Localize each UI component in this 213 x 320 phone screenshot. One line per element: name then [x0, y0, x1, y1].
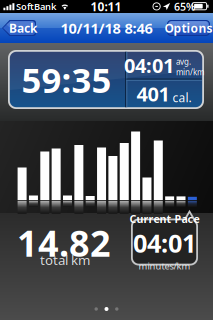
staticText: total km [40, 251, 90, 269]
staticText: 04:01 [133, 226, 196, 260]
staticText: 65% [174, 0, 195, 14]
staticText: 10:11 [90, 0, 121, 14]
button[interactable]: Back [2, 20, 36, 36]
staticText: avg. [176, 56, 191, 67]
staticText: 401 [137, 80, 170, 107]
staticText: min/km [176, 67, 204, 78]
staticText: Options [164, 20, 212, 36]
staticText: 59:35 [21, 56, 111, 102]
staticText: 04:01 [124, 52, 174, 79]
staticText: minutes/km [138, 260, 190, 272]
staticText: Current Pace [129, 212, 199, 226]
staticText: 10/11/18 8:46 [60, 18, 152, 38]
staticText: 14.82 [17, 219, 111, 267]
staticText: Back [9, 20, 37, 36]
staticText: cal. [173, 90, 192, 105]
button[interactable]: Options [167, 20, 210, 36]
staticText: SoftBank [16, 0, 56, 13]
